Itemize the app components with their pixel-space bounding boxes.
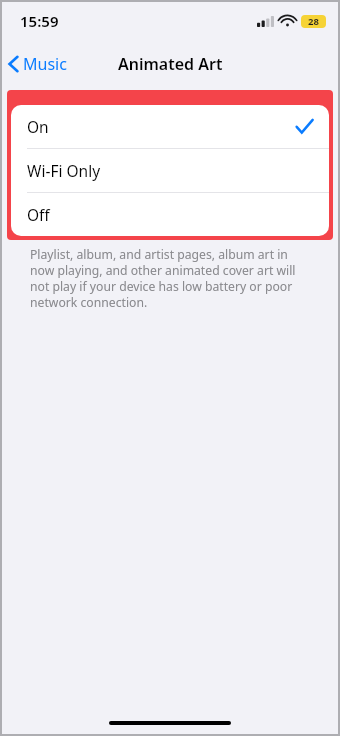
other: Selected [296, 119, 313, 134]
staticText: Wi-Fi Only [27, 160, 101, 181]
button[interactable]: Wi-Fi Only [11, 149, 329, 192]
staticText: Playlist, album, and artist pages, album… [30, 246, 314, 310]
staticText: Animated Art [118, 53, 223, 75]
staticText: Music [23, 53, 67, 75]
button[interactable]: Music [0, 49, 75, 79]
button[interactable]: On [11, 105, 329, 148]
staticText: 28 [308, 15, 319, 28]
staticText: 15:59 [20, 11, 59, 31]
staticText: Off [27, 204, 50, 225]
button[interactable]: Off [11, 193, 329, 236]
staticText: On [27, 116, 49, 137]
